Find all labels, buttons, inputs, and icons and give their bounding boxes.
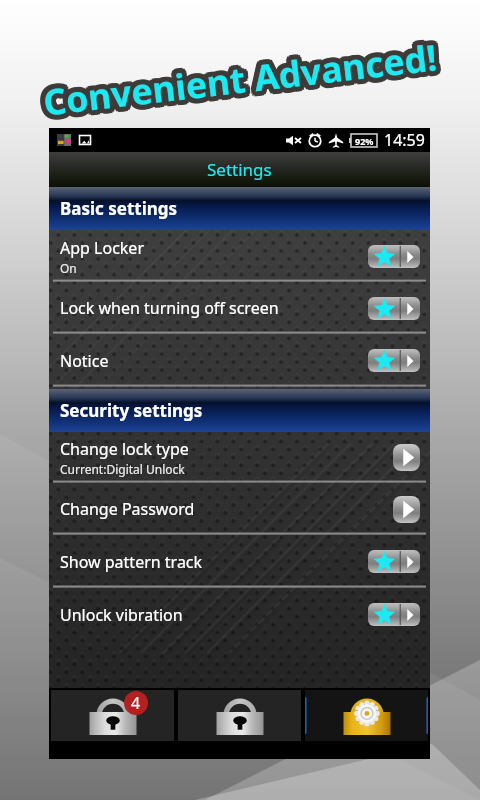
staticText: 14:59 xyxy=(384,129,425,151)
staticText: Convenient Advanced! xyxy=(45,36,444,129)
button[interactable]: Open xyxy=(393,496,420,523)
staticText: Convenient Advanced! xyxy=(43,37,442,130)
staticText: Convenient Advanced! xyxy=(39,35,438,128)
staticText: Change Password xyxy=(60,498,195,520)
staticText: Convenient Advanced! xyxy=(42,33,441,126)
staticText: Convenient Advanced! xyxy=(42,27,441,120)
staticText: Convenient Advanced! xyxy=(40,33,439,127)
staticText: Convenient Advanced! xyxy=(44,28,443,121)
button[interactable]: Change Password xyxy=(49,483,430,535)
staticText: Convenient Advanced! xyxy=(44,33,442,126)
staticText: Settings xyxy=(207,158,272,181)
staticText: Convenient Advanced! xyxy=(42,33,441,126)
staticText: Convenient Advanced! xyxy=(42,33,441,126)
staticText: Convenient Advanced! xyxy=(36,33,434,126)
button[interactable]: Toggle on xyxy=(368,550,420,573)
button[interactable]: App locker tab xyxy=(178,690,301,741)
staticText: Convenient Advanced! xyxy=(45,30,444,123)
staticText: Show pattern track xyxy=(60,551,203,573)
button[interactable]: Toggle on xyxy=(368,349,420,372)
staticText: Convenient Advanced! xyxy=(37,32,436,125)
staticText: Convenient Advanced! xyxy=(40,35,439,129)
button[interactable]: Settings tab xyxy=(305,690,428,741)
button[interactable]: Toggle on xyxy=(368,297,420,320)
staticText: Convenient Advanced! xyxy=(41,31,440,124)
staticText: 4 xyxy=(131,692,141,714)
staticText: Convenient Advanced! xyxy=(36,35,435,128)
button[interactable]: Show pattern track xyxy=(49,535,430,588)
button[interactable]: Toggle on xyxy=(368,603,420,626)
staticText: Convenient Advanced! xyxy=(42,35,441,128)
staticText: Convenient Advanced! xyxy=(36,29,435,122)
staticText: Change lock type xyxy=(60,438,189,460)
staticText: Convenient Advanced! xyxy=(42,32,441,125)
staticText: Convenient Advanced! xyxy=(43,31,442,124)
staticText: Convenient Advanced! xyxy=(41,31,440,124)
staticText: On xyxy=(60,260,77,276)
button[interactable]: Change lock type xyxy=(49,432,430,483)
staticText: Unlock vibration xyxy=(60,604,183,626)
staticText: Convenient Advanced! xyxy=(46,34,445,127)
staticText: Convenient Advanced! xyxy=(41,32,439,126)
staticText: Convenient Advanced! xyxy=(39,31,438,125)
staticText: Convenient Advanced! xyxy=(45,32,444,125)
staticText: Convenient Advanced! xyxy=(41,31,440,124)
staticText: Security settings xyxy=(60,399,203,422)
staticText: Convenient Advanced! xyxy=(38,31,437,124)
staticText: Convenient Advanced! xyxy=(40,30,439,124)
button[interactable]: Notice xyxy=(49,334,430,387)
button[interactable]: Lock when turning off screen xyxy=(49,282,430,334)
staticText: Convenient Advanced! xyxy=(41,37,440,131)
staticText: Convenient Advanced! xyxy=(43,32,442,125)
staticText: Convenient Advanced! xyxy=(39,31,438,125)
staticText: App Locker xyxy=(60,237,144,259)
staticText: Basic settings xyxy=(60,197,178,220)
staticText: Convenient Advanced! xyxy=(40,29,439,123)
button[interactable]: Toggle on xyxy=(368,245,420,268)
staticText: Convenient Advanced! xyxy=(38,28,437,121)
button[interactable]: Unlock vibration xyxy=(49,588,430,641)
staticText: Convenient Advanced! xyxy=(38,33,436,126)
staticText: Convenient Advanced! xyxy=(39,31,438,125)
staticText: Convenient Advanced! xyxy=(40,33,439,127)
staticText: Convenient Advanced! xyxy=(39,33,437,126)
staticText: Convenient Advanced! xyxy=(41,29,440,122)
staticText: Convenient Advanced! xyxy=(41,35,440,129)
staticText: Convenient Advanced! xyxy=(40,33,439,127)
staticText: Convenient Advanced! xyxy=(40,27,439,121)
staticText: 92% xyxy=(355,135,374,147)
staticText: Convenient Advanced! xyxy=(42,30,441,123)
button[interactable]: App Locker xyxy=(49,230,430,282)
staticText: Convenient Advanced! xyxy=(38,34,437,127)
staticText: Notice xyxy=(60,350,109,372)
staticText: Convenient Advanced! xyxy=(37,37,436,130)
staticText: Convenient Advanced! xyxy=(39,29,438,123)
staticText: Lock when turning off screen xyxy=(60,297,279,319)
staticText: Convenient Advanced! xyxy=(35,31,434,124)
staticText: Current:Digital Unlock xyxy=(60,461,185,477)
button[interactable]: Open xyxy=(393,444,420,471)
staticText: Convenient Advanced! xyxy=(43,34,442,127)
staticText: Convenient Advanced! xyxy=(39,38,438,131)
staticText: Convenient Advanced! xyxy=(41,34,440,128)
button[interactable]: App locker tab xyxy=(51,690,174,741)
